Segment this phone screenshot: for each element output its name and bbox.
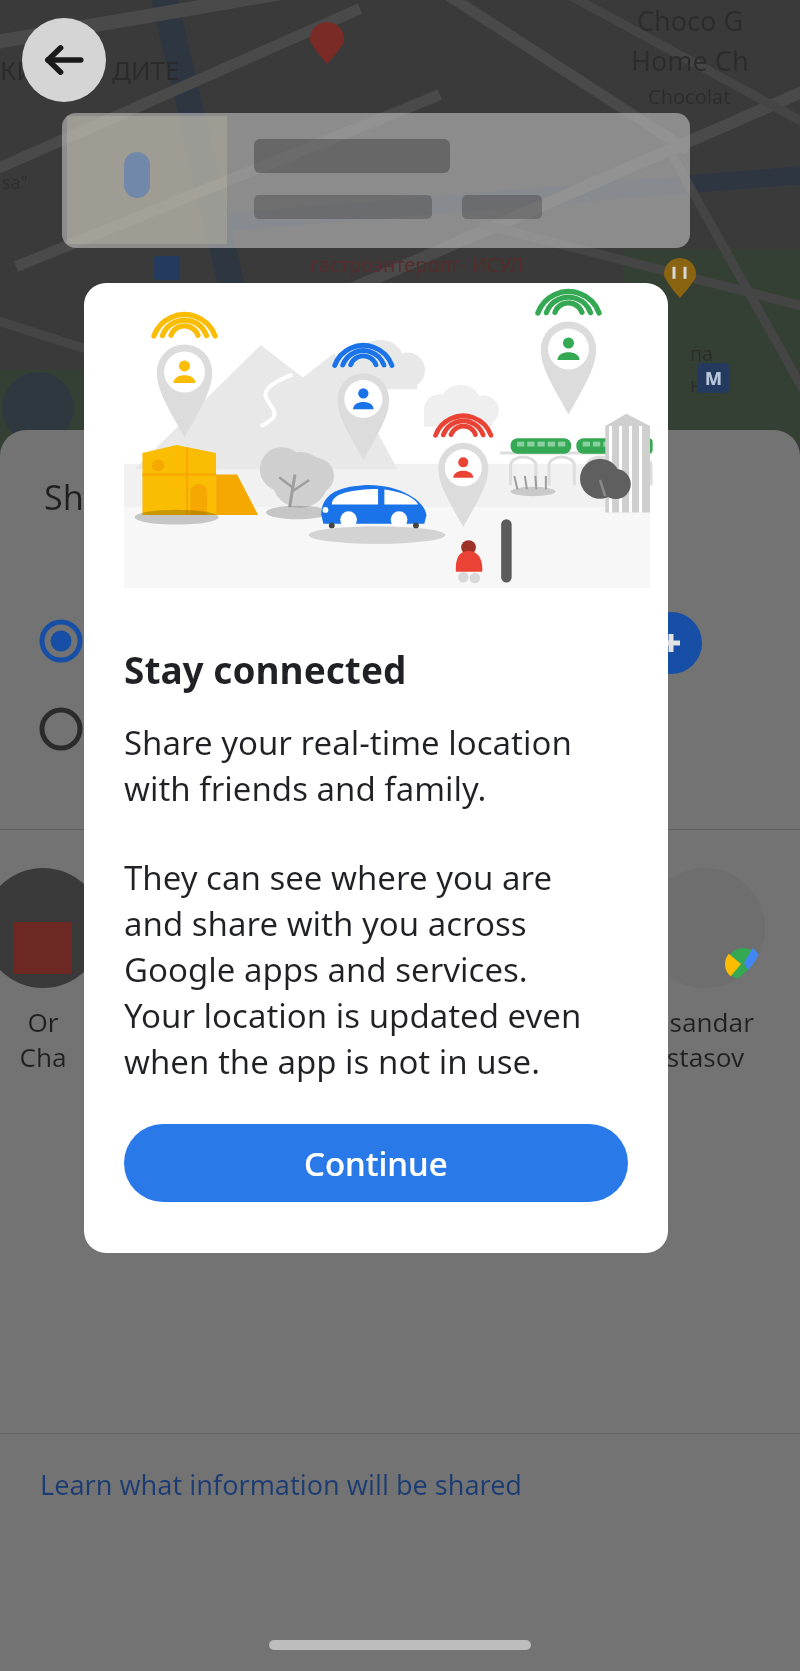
staticText: па	[690, 340, 714, 367]
button[interactable]: Back	[22, 18, 106, 102]
staticText: КИ	[0, 52, 36, 87]
staticText: Home Ch	[631, 42, 749, 79]
staticText: They can see where you are and share wit…	[124, 855, 582, 1084]
staticText: Share your real-time location with frien…	[124, 720, 572, 811]
staticText: ДИТЕ	[112, 52, 180, 87]
staticText: Stay connected	[124, 644, 407, 694]
staticText: sa"	[2, 170, 28, 195]
button[interactable]: Or Cha	[0, 830, 138, 1074]
button[interactable]: Add person	[640, 612, 702, 674]
staticText: ssandar stasov	[657, 1004, 754, 1074]
staticText: Continue	[304, 1141, 448, 1186]
button[interactable]: Continue	[124, 1124, 628, 1202]
staticText: Share your location	[44, 474, 354, 520]
button[interactable]	[0, 600, 800, 682]
staticText: Or Cha	[19, 1004, 67, 1074]
staticText: M	[705, 366, 722, 391]
button[interactable]	[0, 688, 800, 770]
staticText: на	[690, 371, 714, 398]
button[interactable]: ssandar stasov	[610, 830, 800, 1074]
button[interactable]: Learn what information will be shared	[0, 1434, 800, 1534]
staticText: Choco G	[637, 2, 744, 39]
staticText: Learn what information will be shared	[40, 1466, 522, 1503]
staticText: Chocolat	[648, 83, 731, 110]
staticText: гастроэнтеролг- ИСУЛ	[310, 251, 524, 278]
